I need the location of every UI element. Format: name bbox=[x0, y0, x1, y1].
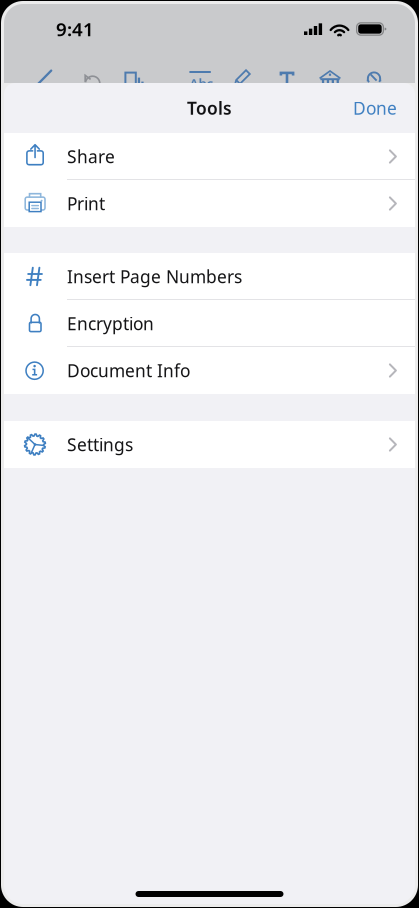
staticText: Encryption bbox=[67, 312, 154, 335]
button[interactable]: Insert Page Numbers bbox=[4, 253, 415, 300]
button[interactable]: Settings bbox=[4, 421, 415, 468]
staticText: Tools bbox=[187, 96, 232, 119]
staticText: 9:41 bbox=[56, 17, 94, 41]
staticText: Settings bbox=[67, 433, 133, 456]
button[interactable]: Encryption bbox=[4, 300, 415, 347]
staticText: Insert Page Numbers bbox=[67, 265, 242, 288]
staticText: Share bbox=[67, 145, 115, 168]
button[interactable]: Print bbox=[4, 180, 415, 227]
button[interactable]: Share bbox=[4, 133, 415, 180]
staticText: Abc bbox=[190, 74, 214, 92]
button[interactable]: Done bbox=[353, 84, 415, 131]
staticText: Document Info bbox=[67, 359, 190, 382]
staticText: Done bbox=[353, 96, 397, 119]
staticText: Print bbox=[67, 192, 105, 215]
button[interactable]: Document Info bbox=[4, 347, 415, 394]
